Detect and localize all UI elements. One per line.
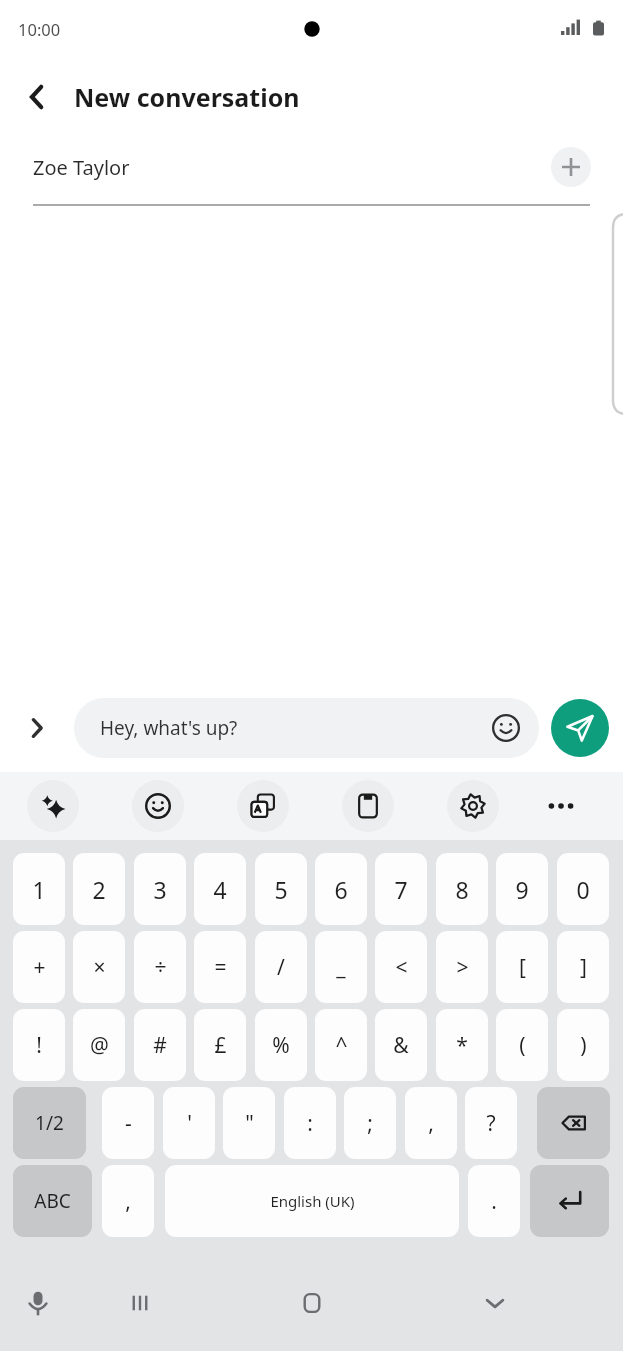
button[interactable]: 5 <box>255 853 307 925</box>
staticText: - <box>125 1109 132 1138</box>
staticText: < <box>395 953 408 982</box>
button[interactable]: AI suggestions <box>27 780 79 832</box>
staticText: 2 <box>92 874 106 905</box>
button[interactable]: Voice input <box>14 1279 62 1327</box>
button[interactable]: ( <box>496 1009 548 1081</box>
staticText: _ <box>336 953 346 982</box>
staticText: % <box>272 1031 290 1060</box>
staticText: £ <box>214 1031 227 1060</box>
button[interactable]: > <box>436 931 488 1003</box>
staticText: ) <box>580 1031 587 1060</box>
button[interactable]: 1 <box>13 853 65 925</box>
button[interactable]: Send <box>551 699 609 757</box>
button[interactable]: ) <box>557 1009 609 1081</box>
staticText: . <box>491 1187 497 1216</box>
button[interactable]: & <box>375 1009 427 1081</box>
staticText: # <box>153 1031 167 1060</box>
staticText: " <box>245 1109 254 1138</box>
button[interactable]: ! <box>13 1009 65 1081</box>
staticText: @ <box>90 1031 109 1060</box>
button[interactable]: Translate <box>237 780 289 832</box>
button[interactable]: , <box>102 1165 154 1237</box>
button[interactable]: * <box>436 1009 488 1081</box>
staticText: 6 <box>334 874 348 905</box>
button[interactable]: Emoji <box>489 711 523 745</box>
button[interactable]: " <box>223 1087 275 1159</box>
button[interactable]: Enter <box>530 1165 609 1237</box>
button[interactable]: 2 <box>73 853 125 925</box>
button[interactable]: 8 <box>436 853 488 925</box>
button[interactable]: - <box>102 1087 154 1159</box>
button[interactable]: Hey, what's up? <box>74 698 539 758</box>
button[interactable]: Emoji <box>132 780 184 832</box>
button[interactable]: 6 <box>315 853 367 925</box>
staticText: × <box>93 953 106 982</box>
button[interactable]: 1/2 <box>13 1087 86 1159</box>
staticText: ? <box>486 1109 496 1138</box>
staticText: ' <box>187 1109 192 1138</box>
button[interactable]: 0 <box>557 853 609 925</box>
staticText: 7 <box>394 874 408 905</box>
button[interactable]: Recent apps <box>116 1279 164 1327</box>
staticText: ! <box>36 1031 42 1060</box>
staticText: 1/2 <box>35 1110 64 1136</box>
button[interactable]: Settings <box>447 780 499 832</box>
button[interactable]: More <box>537 782 585 830</box>
button[interactable]: + <box>13 931 65 1003</box>
staticText: ^ <box>335 1031 348 1060</box>
staticText: 3 <box>153 874 167 905</box>
button[interactable]: Add recipient <box>551 147 591 187</box>
staticText: 8 <box>455 874 469 905</box>
button[interactable]: @ <box>73 1009 125 1081</box>
button[interactable]: ^ <box>315 1009 367 1081</box>
staticText: = <box>214 953 227 982</box>
button[interactable]: ? <box>465 1087 517 1159</box>
staticText: ÷ <box>154 953 167 982</box>
button[interactable]: , <box>405 1087 457 1159</box>
button[interactable]: = <box>194 931 246 1003</box>
button[interactable]: % <box>255 1009 307 1081</box>
button[interactable]: < <box>375 931 427 1003</box>
button[interactable]: × <box>73 931 125 1003</box>
button[interactable]: ; <box>344 1087 396 1159</box>
button[interactable]: 9 <box>496 853 548 925</box>
button[interactable]: 3 <box>134 853 186 925</box>
button[interactable]: Home <box>288 1279 336 1327</box>
staticText: , <box>428 1109 434 1138</box>
staticText: 10:00 <box>18 18 61 40</box>
button[interactable]: ] <box>557 931 609 1003</box>
staticText: / <box>277 953 285 982</box>
staticText: * <box>456 1031 468 1060</box>
button[interactable]: ' <box>163 1087 215 1159</box>
button[interactable]: : <box>284 1087 336 1159</box>
staticText: > <box>456 953 469 982</box>
staticText: + <box>33 953 46 982</box>
button[interactable]: Clipboard <box>342 780 394 832</box>
staticText: Zoe Taylor <box>33 154 130 181</box>
button[interactable]: . <box>468 1165 520 1237</box>
staticText: ] <box>580 953 587 982</box>
button[interactable]: Backspace <box>537 1087 610 1159</box>
button[interactable]: 7 <box>375 853 427 925</box>
button[interactable]: 4 <box>194 853 246 925</box>
button[interactable]: # <box>134 1009 186 1081</box>
button[interactable]: Expand <box>0 684 74 772</box>
staticText: English (UK) <box>270 1191 355 1211</box>
staticText: ABC <box>34 1188 71 1214</box>
staticText: : <box>307 1109 313 1138</box>
button[interactable]: Hide keyboard <box>471 1279 519 1327</box>
staticText: [ <box>519 953 526 982</box>
staticText: , <box>125 1187 131 1216</box>
button[interactable]: £ <box>194 1009 246 1081</box>
button[interactable]: English (UK) <box>165 1165 459 1237</box>
button[interactable]: ÷ <box>134 931 186 1003</box>
staticText: New conversation <box>74 80 300 114</box>
staticText: 1 <box>32 874 46 905</box>
staticText: 5 <box>274 874 288 905</box>
button[interactable]: / <box>255 931 307 1003</box>
staticText: 0 <box>576 874 590 905</box>
button[interactable]: _ <box>315 931 367 1003</box>
button[interactable]: [ <box>496 931 548 1003</box>
button[interactable]: Back <box>0 58 74 136</box>
button[interactable]: ABC <box>13 1165 92 1237</box>
